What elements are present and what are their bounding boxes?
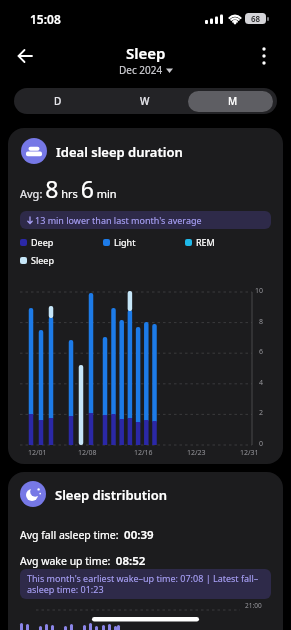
staticText: Sleep [31,254,54,266]
staticText: 15:08 [30,11,61,27]
staticText: Avg wake up time: 08:52 [20,553,146,569]
staticText: D [54,94,62,108]
staticText: Sleep [126,43,166,63]
staticText: 12/23 [187,448,206,458]
staticText: 12/08 [78,448,97,458]
staticText: M [228,94,238,108]
staticText: 0 [259,439,264,449]
button[interactable] [250,42,278,70]
staticText: 12/01 [28,448,47,458]
staticText: W [140,94,150,108]
staticText: 10 [255,286,264,296]
button[interactable]: D [14,88,101,114]
staticText: Dec 2024 [119,63,163,77]
staticText: Ideal sleep duration [56,143,183,161]
button[interactable]: M [189,88,277,114]
staticText: 2 [259,408,264,418]
button[interactable]: W [101,88,189,114]
staticText: Deep [31,236,54,248]
staticText: 13 min lower than last month's average [35,214,202,226]
staticText: 8 [259,317,264,327]
button[interactable] [10,42,40,70]
staticText: 4 [259,378,264,388]
staticText: Light [114,236,136,248]
button[interactable]: Dec 2024 [119,63,173,77]
staticText: Avg: 8 hrs 6 min [20,173,117,204]
staticText: Sleep distribution [55,486,168,504]
staticText: This month's earliest wake–up time: 07:0… [27,572,259,596]
staticText: 6 [259,347,264,357]
staticText: 12/16 [134,448,153,458]
staticText: REM [196,236,215,248]
staticText: 12/31 [240,448,259,458]
staticText: 68 [251,13,261,24]
staticText: Avg fall asleep time: 00:39 [20,527,154,543]
staticText: 21:00 [245,601,262,610]
